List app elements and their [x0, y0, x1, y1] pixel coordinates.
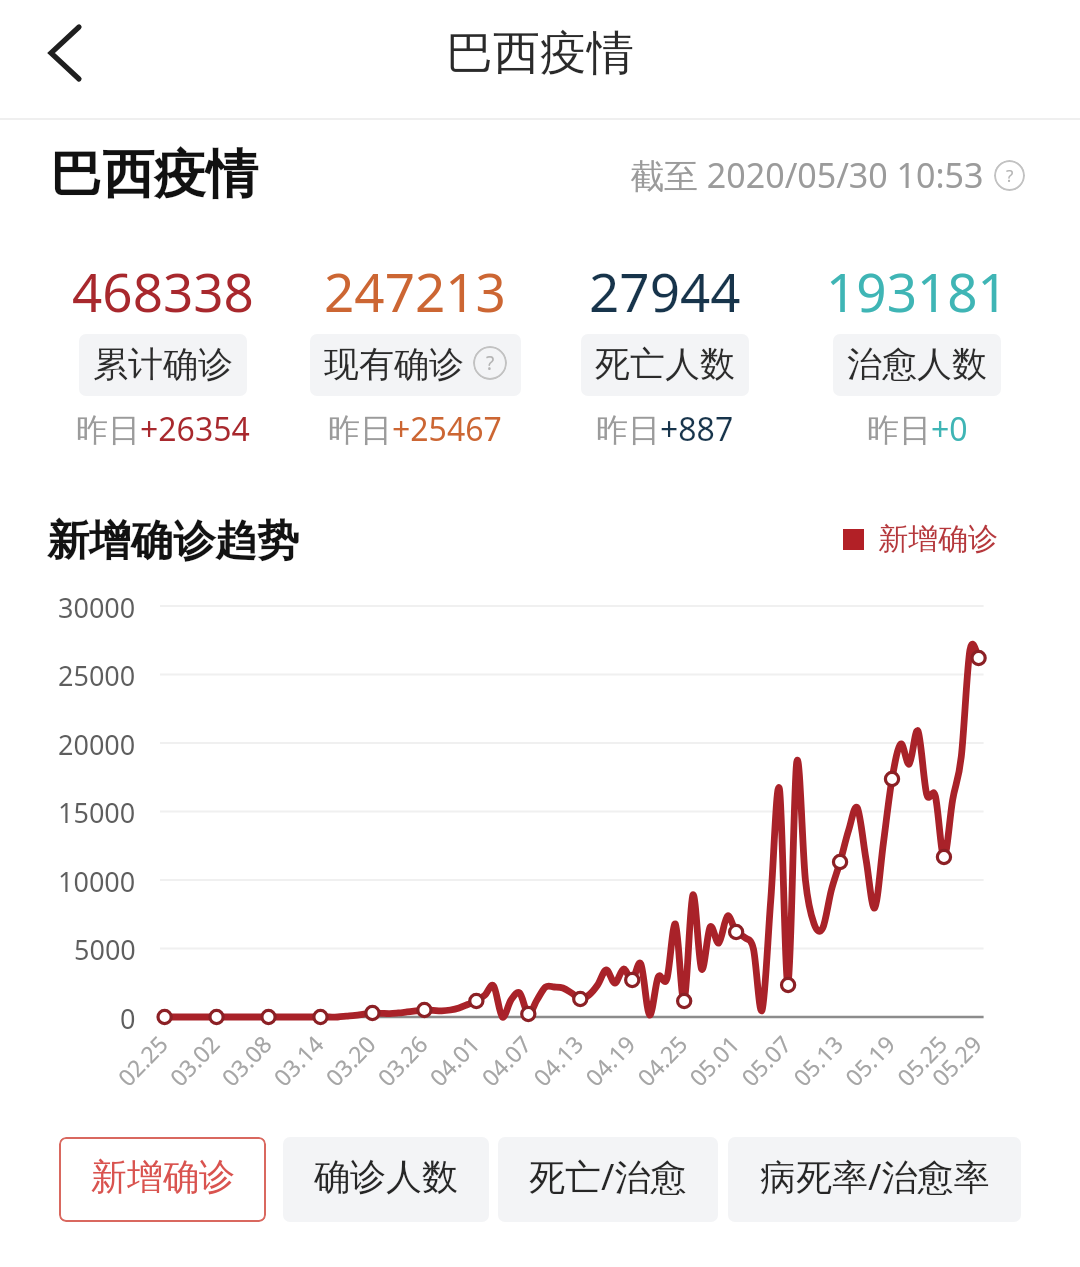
- staticText: 昨日+0: [867, 407, 968, 451]
- staticText: 现有确诊: [324, 342, 464, 386]
- staticText: 新增确诊趋势: [47, 515, 299, 568]
- staticText: 死亡/治愈: [529, 1152, 687, 1201]
- staticText: 截至 2020/05/30 10:53: [630, 152, 984, 198]
- staticText: 468338: [72, 255, 254, 327]
- staticText: ?: [1006, 164, 1014, 187]
- staticText: 新增确诊: [878, 520, 998, 558]
- button[interactable]: 确诊人数: [283, 1137, 489, 1222]
- staticText: 新增确诊: [91, 1154, 235, 1199]
- staticText: 昨日+26354: [76, 407, 250, 451]
- staticText: 昨日+25467: [328, 407, 502, 451]
- staticText: 247213: [324, 255, 506, 327]
- button[interactable]: 27944: [539, 255, 791, 451]
- staticText: 累计确诊: [93, 342, 233, 386]
- staticText: 巴西疫情: [446, 24, 634, 83]
- button[interactable]: 死亡/治愈: [498, 1137, 718, 1222]
- button[interactable]: Back: [29, 17, 101, 89]
- button[interactable]: 病死率/治愈率: [728, 1137, 1021, 1222]
- button[interactable]: Data source information: [994, 160, 1025, 191]
- staticText: 治愈人数: [847, 342, 987, 386]
- button[interactable]: About currently confirmed cases: [473, 346, 507, 380]
- staticText: 昨日+887: [596, 407, 734, 451]
- button[interactable]: 247213: [289, 255, 541, 451]
- staticText: 巴西疫情: [50, 142, 258, 208]
- staticText: 确诊人数: [314, 1154, 458, 1199]
- button[interactable]: 193181: [791, 255, 1043, 451]
- staticText: 193181: [826, 255, 1008, 327]
- staticText: 27944: [589, 255, 741, 327]
- button[interactable]: 468338: [37, 255, 289, 451]
- staticText: ?: [486, 350, 495, 376]
- button[interactable]: 新增确诊: [59, 1137, 266, 1222]
- staticText: 死亡人数: [595, 342, 735, 386]
- staticText: 病死率/治愈率: [760, 1152, 990, 1201]
